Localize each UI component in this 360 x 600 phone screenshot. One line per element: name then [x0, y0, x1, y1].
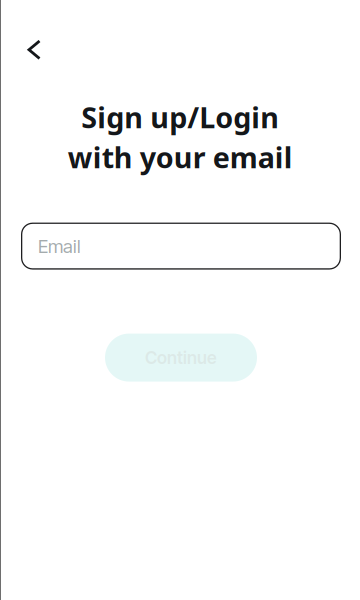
staticText: Sign up/Login with your email [67, 97, 292, 177]
button[interactable]: Back [17, 30, 51, 69]
button[interactable]: Email [21, 223, 341, 270]
staticText: Continue [145, 347, 217, 368]
button[interactable]: Continue [105, 334, 257, 382]
staticText: Email [38, 235, 81, 257]
